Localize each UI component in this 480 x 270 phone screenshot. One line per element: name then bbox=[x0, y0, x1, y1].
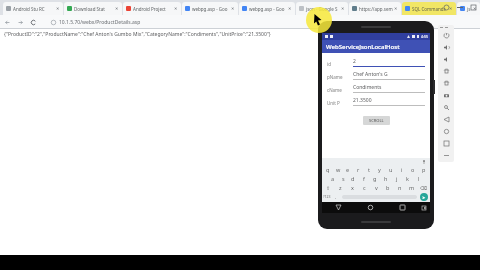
button[interactable]: Home bbox=[442, 127, 451, 136]
button[interactable]: Screenshot bbox=[418, 202, 430, 213]
button[interactable]: Reload bbox=[30, 19, 37, 26]
button[interactable]: i bbox=[396, 165, 407, 174]
button[interactable]: Android Stu RC bbox=[3, 2, 63, 15]
staticText: ✕ bbox=[231, 6, 235, 11]
button[interactable]: https://app.sem bbox=[349, 2, 401, 15]
staticText: b bbox=[386, 184, 390, 191]
button[interactable]: Shift bbox=[323, 183, 334, 192]
button[interactable]: More bbox=[442, 151, 451, 160]
staticText: Unit P bbox=[327, 100, 353, 106]
staticText: Android Stu RC bbox=[13, 6, 56, 12]
button[interactable]: webpg.asp - Goo bbox=[239, 2, 295, 15]
button[interactable]: Volume up bbox=[442, 43, 451, 52]
button[interactable]: Enter bbox=[420, 193, 428, 201]
button[interactable]: Account bbox=[444, 5, 449, 10]
button[interactable]: Forward bbox=[17, 19, 24, 26]
staticText: ➤ bbox=[422, 195, 426, 200]
staticText: g bbox=[373, 175, 377, 182]
staticText: r bbox=[357, 166, 360, 173]
button[interactable]: ?123 bbox=[323, 194, 335, 199]
button[interactable]: e bbox=[343, 165, 353, 174]
button[interactable]: SCROLL bbox=[363, 116, 390, 125]
staticText: w bbox=[336, 166, 341, 173]
button[interactable]: Back bbox=[4, 19, 11, 26]
button[interactable]: Download Stat bbox=[64, 2, 122, 15]
button[interactable]: g bbox=[369, 174, 380, 183]
button[interactable]: Back bbox=[442, 115, 451, 124]
button[interactable]: Zoom bbox=[442, 103, 451, 112]
button[interactable]: l bbox=[413, 174, 424, 183]
button[interactable]: h bbox=[380, 174, 391, 183]
button[interactable]: Recents bbox=[386, 202, 418, 213]
button[interactable]: Maximize bbox=[471, 5, 476, 10]
button[interactable]: r bbox=[353, 165, 363, 174]
button[interactable]: Android Project bbox=[123, 2, 181, 15]
staticText: v bbox=[375, 184, 378, 191]
button[interactable]: z bbox=[334, 183, 346, 192]
staticText: o bbox=[411, 166, 415, 173]
button[interactable]: v bbox=[370, 183, 382, 192]
staticText: Chef Anton's G bbox=[353, 71, 388, 78]
staticText: c bbox=[363, 184, 366, 191]
button[interactable]: Voice input bbox=[422, 160, 426, 164]
staticText: {"ProductID":"2","ProductName":"Chef Ant… bbox=[4, 31, 271, 38]
button[interactable]: webpg.asp - Goo bbox=[182, 2, 238, 15]
button[interactable]: t bbox=[363, 165, 374, 174]
staticText: t bbox=[368, 166, 370, 173]
button[interactable]: a bbox=[328, 174, 338, 183]
staticText: json - Google S bbox=[306, 6, 341, 12]
button[interactable]: Power bbox=[442, 31, 451, 40]
staticText: json/json.json bbox=[467, 6, 473, 12]
button[interactable]: x bbox=[346, 183, 358, 192]
staticText: Condiments bbox=[353, 84, 382, 91]
button[interactable]: s bbox=[338, 174, 348, 183]
button[interactable]: w bbox=[333, 165, 343, 174]
button[interactable]: c bbox=[358, 183, 370, 192]
button[interactable]: Rotate right bbox=[442, 79, 451, 88]
button[interactable]: Volume down bbox=[442, 55, 451, 64]
button[interactable]: j bbox=[391, 174, 402, 183]
staticText: Android Project bbox=[133, 6, 174, 12]
button[interactable]: json/json.json bbox=[457, 2, 480, 15]
button[interactable]: Backspace bbox=[418, 183, 429, 192]
button[interactable]: json - Google S bbox=[296, 2, 348, 15]
button[interactable]: Screenshot bbox=[442, 91, 451, 100]
staticText: 10.1.5.70/webx/ProductDetails.asp bbox=[59, 19, 141, 26]
button[interactable]: b bbox=[382, 183, 394, 192]
staticText: j bbox=[396, 175, 398, 182]
button[interactable]: y bbox=[374, 165, 385, 174]
button[interactable]: p bbox=[418, 165, 429, 174]
button[interactable]: m bbox=[406, 183, 418, 192]
staticText: z bbox=[339, 184, 342, 191]
button[interactable]: f bbox=[358, 174, 369, 183]
button[interactable]: , bbox=[335, 194, 342, 199]
button[interactable]: SQL Commands bbox=[402, 2, 456, 15]
staticText: x bbox=[351, 184, 354, 191]
button[interactable]: k bbox=[402, 174, 413, 183]
button[interactable]: Back bbox=[322, 202, 354, 213]
staticText: cName bbox=[327, 87, 353, 93]
staticText: i bbox=[401, 166, 403, 173]
button[interactable]: Home bbox=[354, 202, 386, 213]
staticText: k bbox=[406, 175, 409, 182]
button[interactable]: u bbox=[385, 165, 396, 174]
button[interactable]: Overview bbox=[442, 139, 451, 148]
staticText: n bbox=[398, 184, 402, 191]
button[interactable]: Rotate left bbox=[442, 67, 451, 76]
staticText: webpg.asp - Goo bbox=[192, 6, 231, 12]
staticText: l bbox=[418, 175, 420, 182]
staticText: p bbox=[422, 166, 426, 173]
button[interactable]: o bbox=[407, 165, 418, 174]
staticText: ✕ bbox=[174, 6, 178, 11]
button[interactable]: d bbox=[348, 174, 358, 183]
button[interactable]: q bbox=[323, 165, 333, 174]
staticText: m bbox=[409, 184, 415, 191]
staticText: 2 bbox=[353, 58, 356, 65]
button[interactable]: n bbox=[394, 183, 406, 192]
staticText: pName bbox=[327, 74, 353, 80]
staticText: q bbox=[326, 166, 330, 173]
